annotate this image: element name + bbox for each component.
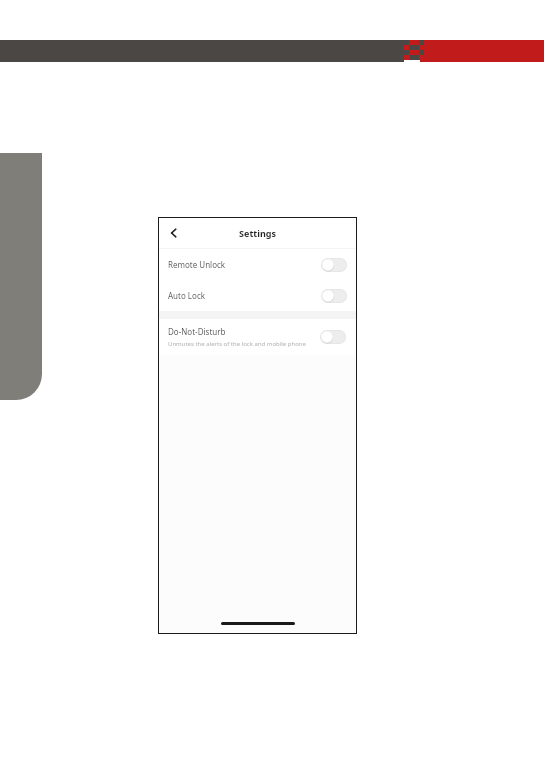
staticText: Unmutes the alerts of the lock and mobil… — [168, 340, 306, 348]
button[interactable]: Do-Not-Disturb — [159, 319, 356, 355]
button[interactable]: Back — [163, 222, 185, 244]
staticText: Auto Lock — [168, 290, 321, 301]
button[interactable]: Toggle — [321, 289, 347, 303]
button[interactable]: Remote Unlock — [159, 249, 356, 280]
button[interactable]: Toggle — [320, 330, 346, 344]
staticText: Do-Not-Disturb — [168, 326, 226, 337]
button[interactable]: Toggle — [321, 258, 347, 272]
staticText: Settings — [239, 227, 276, 239]
staticText: Remote Unlock — [168, 259, 321, 270]
button[interactable]: Auto Lock — [159, 280, 356, 311]
